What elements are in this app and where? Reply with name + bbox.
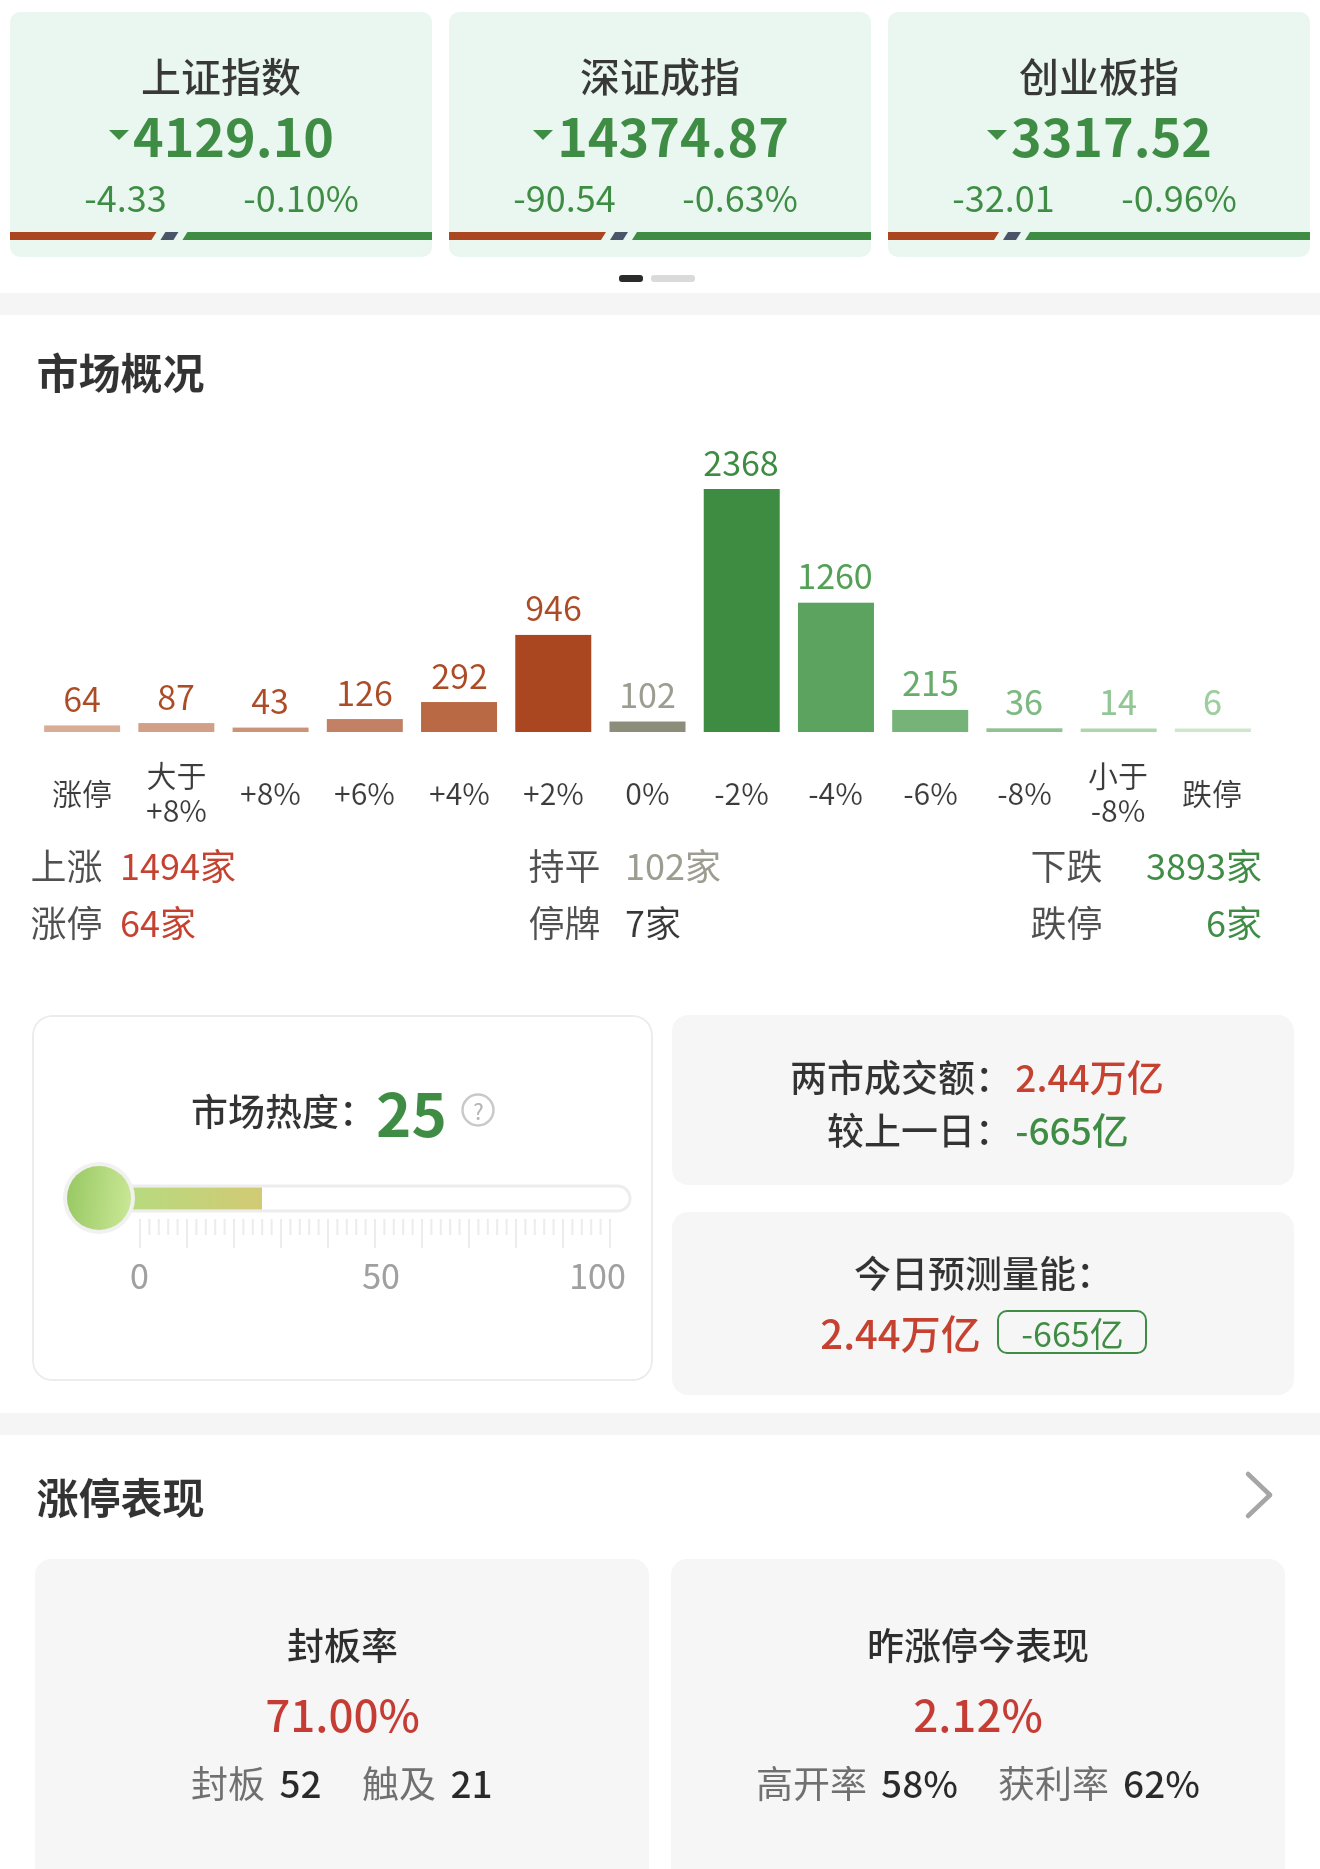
staticText: 小于 -8%: [1088, 752, 1148, 831]
staticText: -6%: [903, 770, 958, 813]
staticText: 25: [376, 1067, 447, 1154]
staticText: 62%: [1123, 1755, 1200, 1809]
staticText: 87: [157, 671, 195, 720]
staticText: +2%: [523, 770, 584, 813]
staticText: 停牌: [528, 895, 601, 947]
staticText: 64家: [120, 895, 196, 947]
staticText: 涨停表现: [36, 1465, 205, 1526]
staticText: 下跌: [1030, 838, 1103, 890]
button[interactable]: 涨停表现: [0, 1460, 1320, 1530]
staticText: 深证成指: [580, 46, 740, 104]
staticText: +4%: [429, 770, 490, 813]
staticText: -665亿: [1015, 1102, 1129, 1156]
staticText: 36: [1005, 676, 1043, 725]
staticText: 市场概况: [36, 340, 205, 401]
staticText: 215: [902, 657, 959, 706]
staticText: -0.96%: [1121, 170, 1237, 222]
button[interactable]: 创业板指: [888, 12, 1310, 257]
staticText: 触及: [362, 1755, 436, 1809]
staticText: 43: [251, 675, 289, 724]
button[interactable]: 深证成指: [449, 12, 871, 257]
staticText: +8%: [240, 770, 301, 813]
staticText: 1494家: [120, 838, 236, 890]
staticText: 持平: [528, 838, 601, 890]
staticText: 4129.10: [133, 97, 334, 172]
button[interactable]: 昨涨停今表现: [671, 1559, 1285, 1869]
staticText: 今日预测量能：: [854, 1245, 1113, 1299]
staticText: 100: [569, 1250, 626, 1299]
staticText: 涨停: [52, 770, 112, 813]
staticText: 6: [1203, 676, 1222, 725]
staticText: 3893家: [1146, 838, 1262, 890]
staticText: 7家: [625, 895, 681, 947]
staticText: -90.54: [513, 170, 616, 222]
staticText: 102家: [625, 838, 721, 890]
staticText: 2.44万亿: [820, 1303, 981, 1361]
button[interactable]: -665亿: [997, 1310, 1147, 1354]
staticText: 较上一日：: [827, 1102, 1012, 1156]
staticText: 涨停: [30, 895, 103, 947]
staticText: 71.00%: [265, 1681, 420, 1745]
staticText: 大于 +8%: [146, 752, 207, 831]
staticText: -2%: [714, 770, 769, 813]
staticText: ?: [473, 1094, 484, 1126]
staticText: 市场热度：: [191, 1083, 376, 1137]
staticText: +6%: [334, 770, 395, 813]
button[interactable]: 今日预测量能：: [672, 1212, 1294, 1395]
staticText: 14374.87: [557, 97, 789, 172]
staticText: 21: [450, 1755, 493, 1809]
staticText: 0: [130, 1250, 149, 1299]
staticText: 946: [525, 582, 582, 631]
staticText: 创业板指: [1019, 46, 1179, 104]
staticText: 50: [362, 1250, 400, 1299]
staticText: 上证指数: [141, 46, 301, 104]
staticText: 126: [336, 667, 393, 716]
staticText: -0.10%: [243, 170, 359, 222]
staticText: 跌停: [1182, 770, 1242, 813]
staticText: 52: [279, 1755, 322, 1809]
button[interactable]: 市场热度：: [32, 1015, 653, 1381]
staticText: 上涨: [30, 838, 103, 890]
staticText: 高开率: [756, 1755, 867, 1809]
staticText: -4.33: [84, 170, 167, 222]
staticText: 58%: [881, 1755, 958, 1809]
staticText: 2368: [703, 437, 779, 486]
staticText: 0%: [625, 770, 670, 813]
staticText: -32.01: [952, 170, 1055, 222]
staticText: 292: [431, 650, 488, 699]
staticText: 2.12%: [913, 1681, 1043, 1745]
staticText: 6家: [1206, 895, 1262, 947]
staticText: 14: [1099, 676, 1137, 725]
staticText: 封板: [191, 1755, 265, 1809]
staticText: -4%: [808, 770, 863, 813]
staticText: 1260: [797, 550, 873, 599]
staticText: 昨涨停今表现: [867, 1617, 1089, 1671]
staticText: 获利率: [998, 1755, 1109, 1809]
staticText: -8%: [997, 770, 1052, 813]
staticText: -0.63%: [682, 170, 798, 222]
button[interactable]: 两市成交额：: [672, 1015, 1294, 1185]
staticText: 2.44万亿: [1015, 1049, 1164, 1103]
staticText: 102: [619, 669, 676, 718]
button[interactable]: 封板率: [35, 1559, 649, 1869]
staticText: 3317.52: [1011, 97, 1212, 172]
staticText: 两市成交额：: [790, 1049, 1012, 1103]
staticText: 封板率: [287, 1617, 398, 1671]
staticText: -665亿: [1021, 1308, 1124, 1357]
button[interactable]: 上证指数: [10, 12, 432, 257]
staticText: 64: [63, 673, 101, 722]
staticText: 跌停: [1030, 895, 1103, 947]
